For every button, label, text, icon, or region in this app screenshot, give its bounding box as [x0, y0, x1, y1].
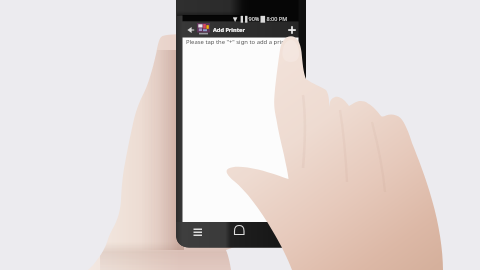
staticText: Add Printer — [213, 26, 245, 34]
staticText: Please tap the "+" sign to add a printer… — [186, 38, 294, 46]
button[interactable]: Add printer — [285, 23, 299, 37]
staticText: ▼ ▐▐ 90% █ 8:00 PM — [233, 15, 288, 22]
button[interactable]: Back — [185, 24, 196, 36]
